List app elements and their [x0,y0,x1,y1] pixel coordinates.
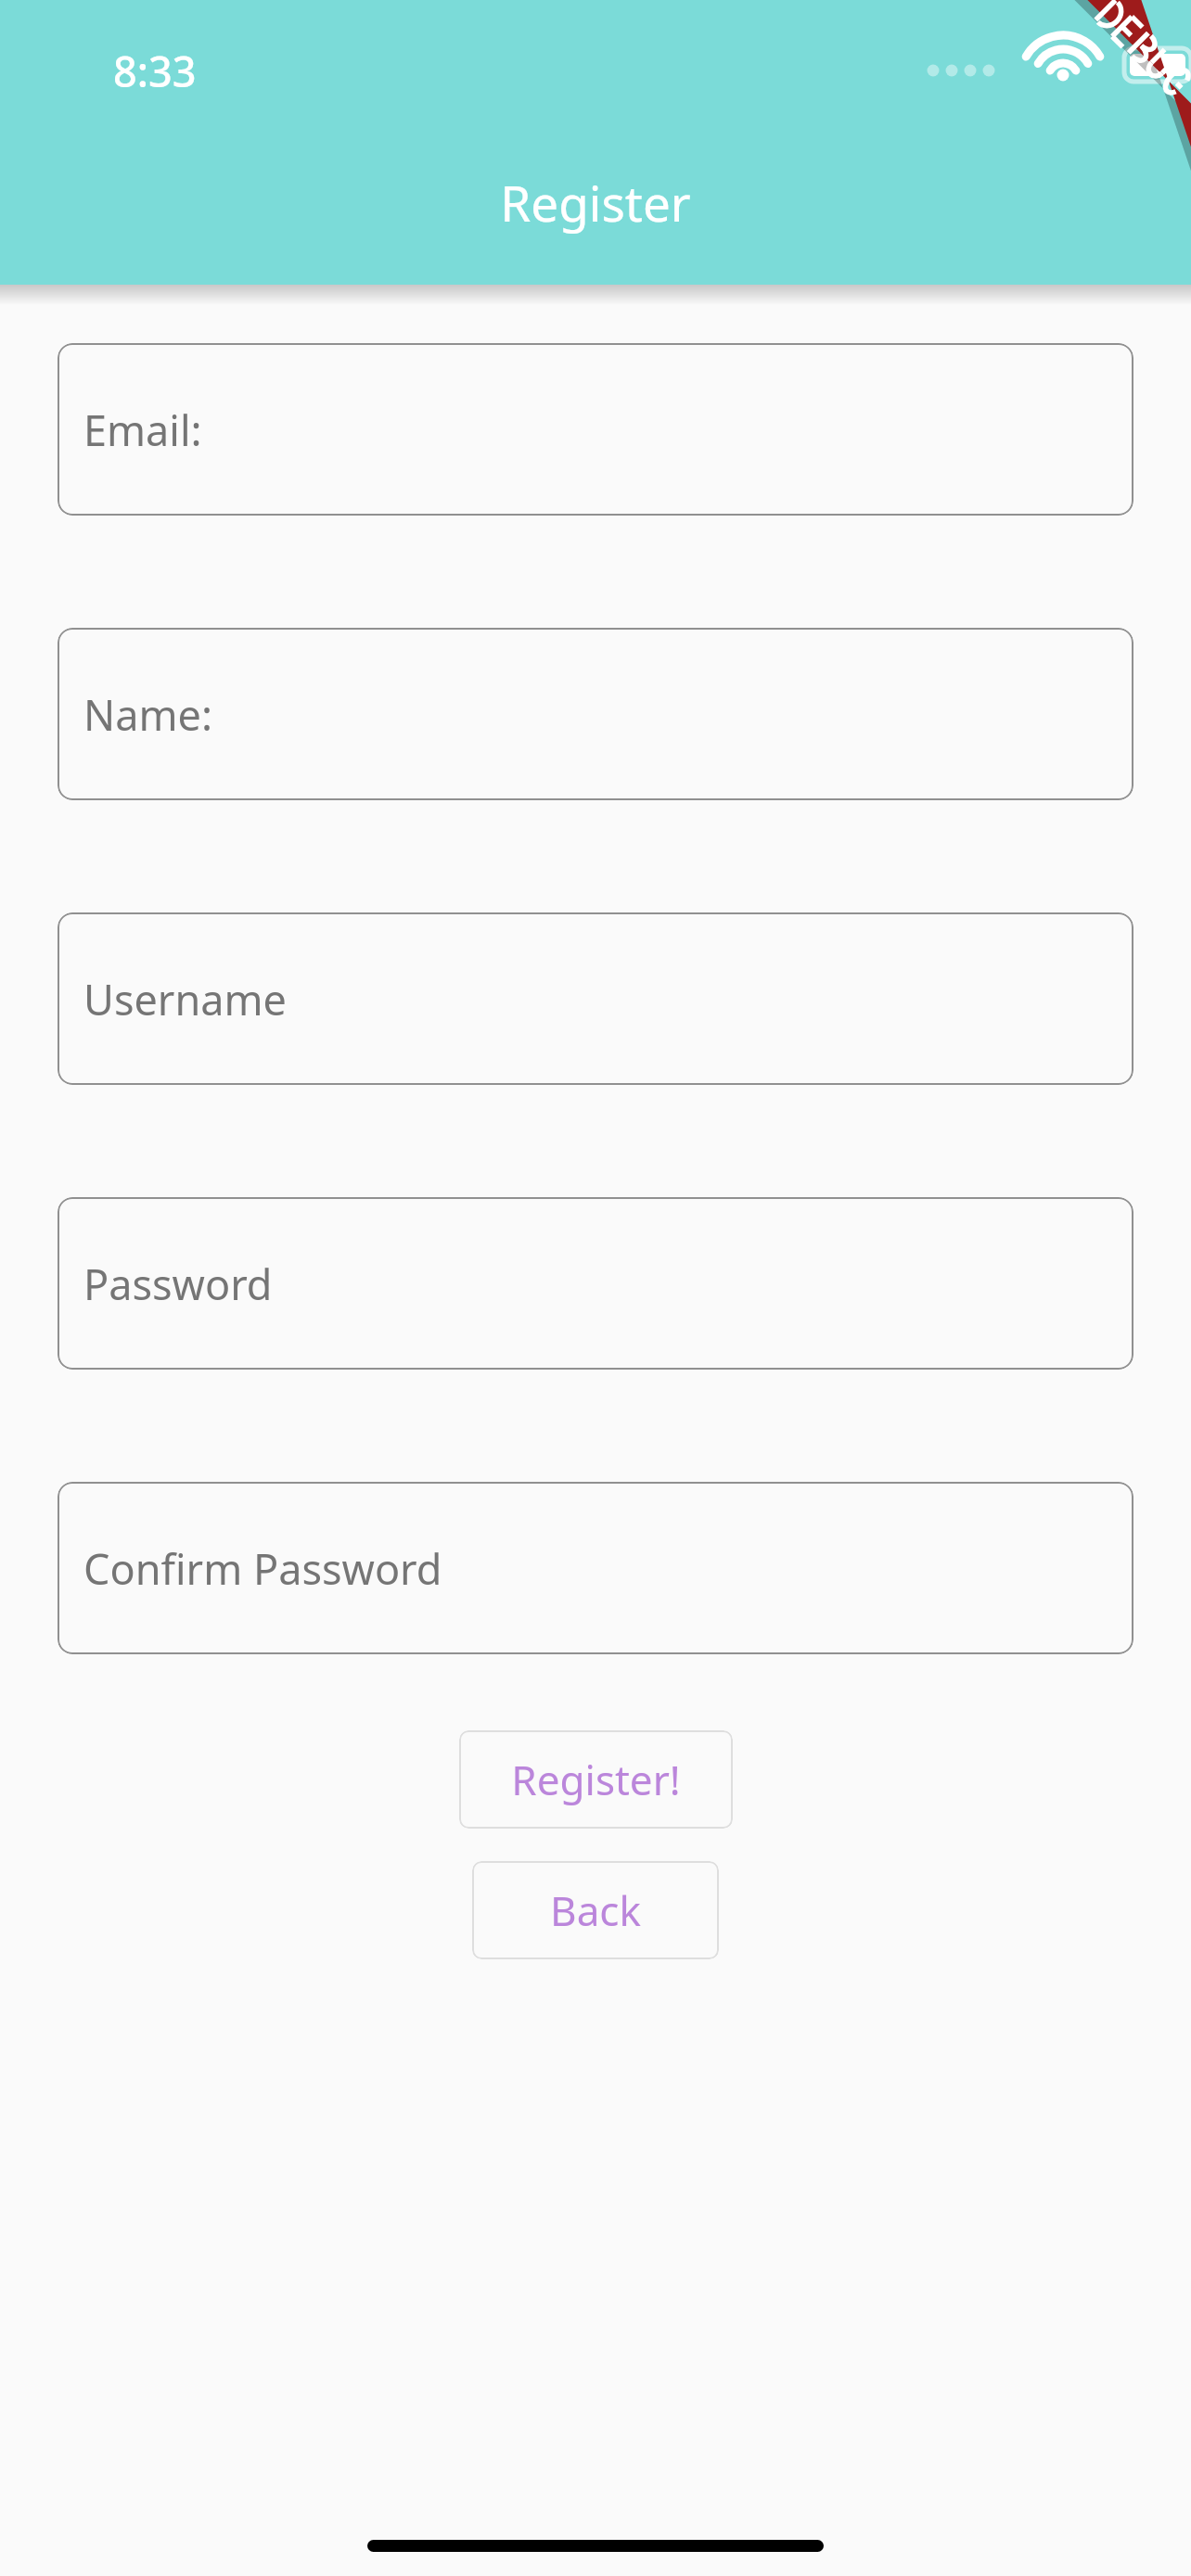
staticText: 8:33 [113,43,197,99]
button[interactable]: Name: [58,628,1133,800]
button[interactable]: Register! [459,1730,733,1829]
button[interactable]: Username [58,912,1133,1085]
button[interactable]: Back [472,1861,719,1959]
staticText: Email: [83,402,202,458]
staticText: Register! [511,1752,681,1807]
staticText: Confirm Password [83,1540,442,1597]
staticText: Back [550,1882,641,1938]
staticText: Register [500,169,691,236]
staticText: Username [83,971,287,1027]
staticText: Password [83,1256,273,1312]
staticText: Name: [83,686,212,743]
button[interactable]: Email: [58,343,1133,516]
button[interactable]: Password [58,1197,1133,1370]
button[interactable]: Confirm Password [58,1482,1133,1654]
